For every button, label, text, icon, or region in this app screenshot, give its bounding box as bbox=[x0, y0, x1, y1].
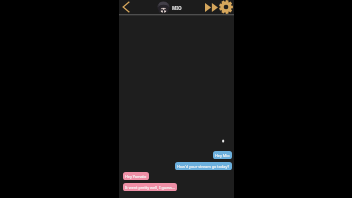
staticText: Hey Mio bbox=[215, 153, 230, 158]
staticText: It went pretty well, I guess... bbox=[125, 185, 175, 190]
button[interactable]: Hey Yamato bbox=[123, 172, 149, 180]
staticText: Hey Yamato bbox=[125, 174, 147, 179]
staticText: How'd your stream go today? bbox=[177, 164, 230, 169]
staticText: MIO bbox=[172, 5, 182, 11]
button[interactable]: Hey Mio bbox=[213, 151, 232, 159]
button[interactable]: Back bbox=[122, 1, 130, 13]
button[interactable]: Fast forward bbox=[203, 1, 218, 14]
button[interactable]: Settings bbox=[218, 0, 234, 14]
button[interactable]: How'd your stream go today? bbox=[175, 162, 232, 170]
button[interactable]: It went pretty well, I guess... bbox=[123, 183, 177, 191]
